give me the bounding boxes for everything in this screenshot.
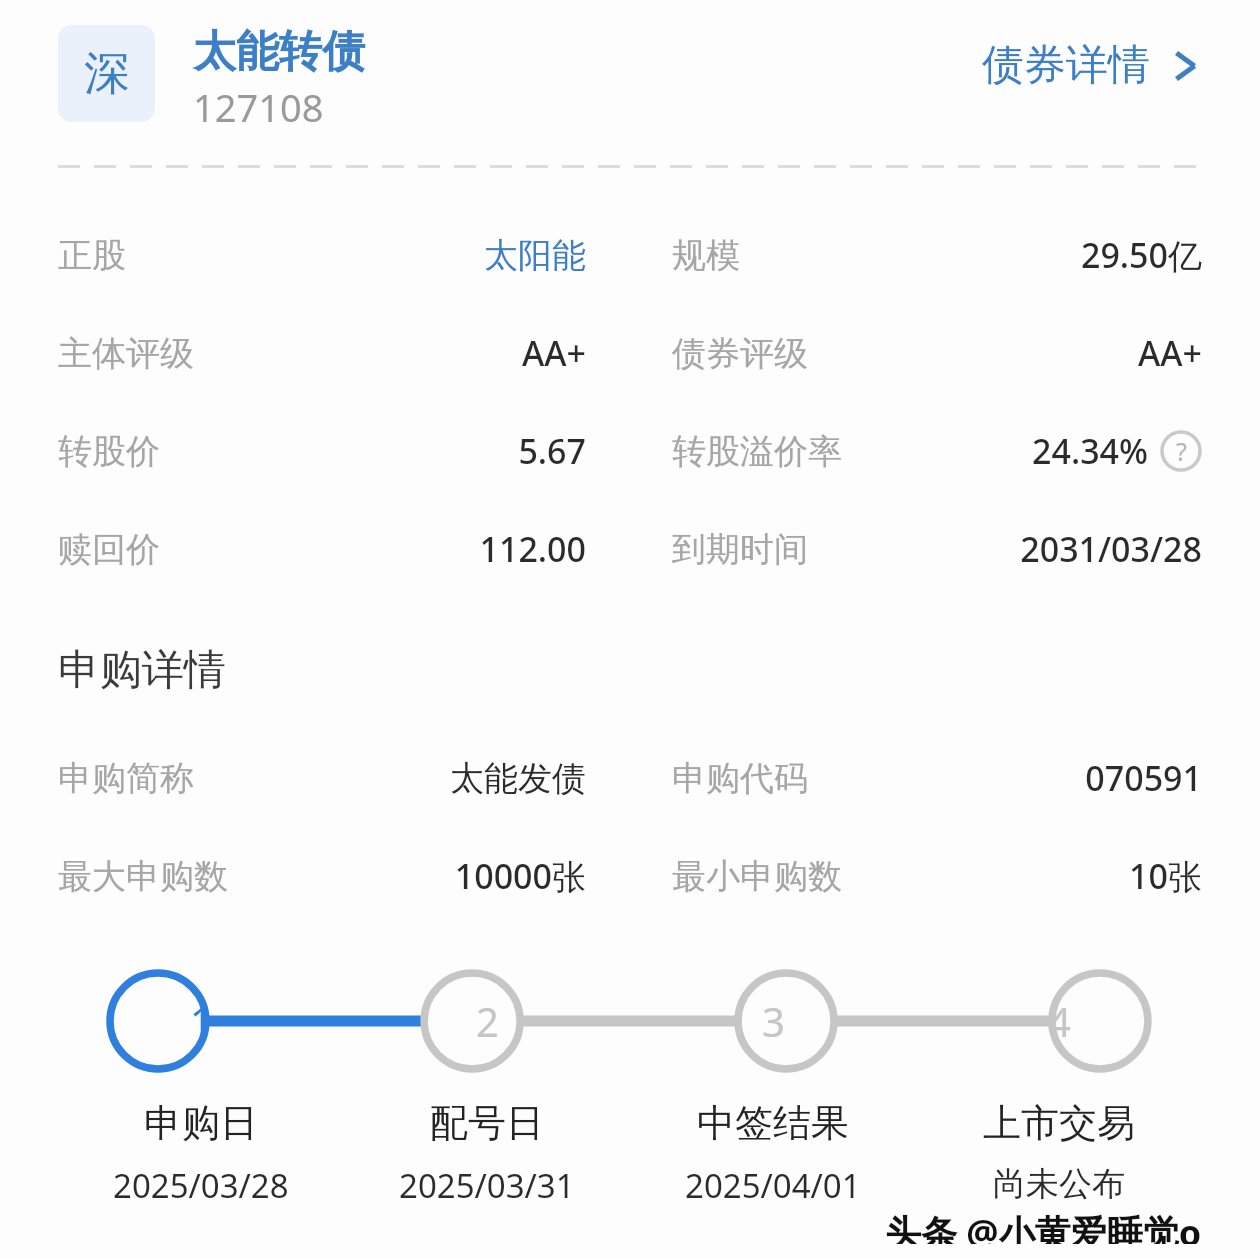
staticText: 规模 bbox=[672, 234, 740, 277]
staticText: 配号日 bbox=[430, 1099, 544, 1147]
button[interactable]: 赎回价 bbox=[58, 500, 1202, 598]
staticText: 债券评级 bbox=[672, 332, 808, 375]
staticText: 正股 bbox=[58, 234, 126, 277]
button[interactable]: 转股溢价率说明 bbox=[1160, 430, 1202, 472]
staticText: 1 bbox=[190, 994, 213, 1048]
staticText: 中签结果 bbox=[697, 1099, 849, 1147]
staticText: 24.34% bbox=[1031, 428, 1148, 474]
button[interactable]: 最大申购数 bbox=[58, 827, 1202, 925]
button[interactable]: 转股价 bbox=[58, 402, 1202, 500]
staticText: 最小申购数 bbox=[672, 855, 842, 898]
staticText: 5.67 bbox=[518, 428, 586, 474]
staticText: 10000张 bbox=[454, 853, 586, 899]
button[interactable]: 2 bbox=[344, 959, 630, 1083]
button[interactable]: 正股 bbox=[58, 206, 1202, 304]
staticText: 太能发债 bbox=[450, 757, 586, 800]
staticText: AA+ bbox=[522, 330, 586, 376]
button[interactable]: 3 bbox=[630, 959, 916, 1083]
staticText: 尚未公布 bbox=[993, 1163, 1125, 1205]
staticText: 2025/04/01 bbox=[685, 1163, 861, 1208]
staticText: 转股溢价率 bbox=[672, 430, 842, 473]
button[interactable]: 1 bbox=[58, 959, 344, 1083]
staticText: 070591 bbox=[1085, 755, 1202, 801]
staticText: 112.00 bbox=[479, 526, 586, 572]
staticText: 申购简称 bbox=[58, 757, 194, 800]
staticText: 申购代码 bbox=[672, 757, 808, 800]
staticText: 3 bbox=[762, 994, 785, 1048]
staticText: 太能转债 bbox=[193, 25, 365, 79]
staticText: 到期时间 bbox=[672, 528, 808, 571]
staticText: ? bbox=[1176, 434, 1187, 468]
staticText: 2025/03/28 bbox=[113, 1163, 289, 1208]
staticText: 赎回价 bbox=[58, 528, 160, 571]
button[interactable]: 深 bbox=[58, 25, 1202, 125]
staticText: 申购日 bbox=[144, 1099, 258, 1147]
staticText: 转股价 bbox=[58, 430, 160, 473]
staticText: 4 bbox=[1048, 994, 1071, 1048]
button[interactable]: 主体评级 bbox=[58, 304, 1202, 402]
button[interactable]: 债券详情 bbox=[982, 25, 1202, 92]
staticText: 2 bbox=[476, 994, 499, 1048]
staticText: 上市交易 bbox=[983, 1099, 1135, 1147]
staticText: 深 bbox=[84, 45, 130, 103]
staticText: 2031/03/28 bbox=[1020, 526, 1202, 572]
staticText: 2025/03/31 bbox=[399, 1163, 575, 1208]
staticText: 127108 bbox=[193, 81, 324, 125]
staticText: 主体评级 bbox=[58, 332, 194, 375]
staticText: 太阳能 bbox=[484, 234, 586, 277]
staticText: AA+ bbox=[1138, 330, 1202, 376]
button[interactable]: 4 bbox=[916, 959, 1202, 1083]
button[interactable]: 申购简称 bbox=[58, 729, 1202, 827]
staticText: 头条 @小黄爱睡觉o bbox=[885, 1208, 1202, 1244]
staticText: 申购详情 bbox=[58, 644, 226, 697]
staticText: 最大申购数 bbox=[58, 855, 228, 898]
staticText: 10张 bbox=[1129, 853, 1202, 899]
staticText: 债券详情 bbox=[982, 39, 1150, 92]
staticText: 29.50亿 bbox=[1080, 232, 1202, 278]
